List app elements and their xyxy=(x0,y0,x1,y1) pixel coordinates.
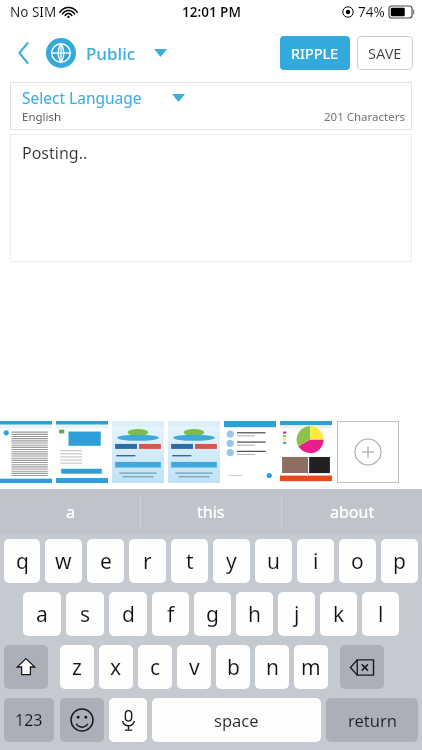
staticText: y xyxy=(226,547,237,576)
staticText: q xyxy=(16,547,29,576)
staticText: m xyxy=(301,653,321,682)
button[interactable]: Posting.. xyxy=(10,134,412,262)
button[interactable]: v xyxy=(177,645,211,689)
button[interactable]: Backspace xyxy=(340,645,384,689)
staticText: p xyxy=(393,547,406,576)
button[interactable] xyxy=(56,421,108,483)
button[interactable]: space xyxy=(152,698,321,742)
staticText: a xyxy=(66,501,75,523)
staticText: SAVE xyxy=(368,43,402,63)
staticText: v xyxy=(189,653,200,682)
button[interactable]: o xyxy=(339,539,376,583)
button[interactable]: n xyxy=(255,645,289,689)
button[interactable]: r xyxy=(129,539,166,583)
button[interactable]: b xyxy=(216,645,250,689)
button[interactable]: l xyxy=(362,592,399,636)
staticText: d xyxy=(122,600,135,629)
staticText: f xyxy=(167,600,175,629)
staticText: k xyxy=(333,600,345,629)
button[interactable]: t xyxy=(171,539,208,583)
staticText: 12:01 PM xyxy=(182,3,241,21)
staticText: h xyxy=(248,600,261,629)
staticText: No SIM xyxy=(10,3,57,21)
staticText: i xyxy=(313,547,319,576)
staticText: about xyxy=(330,501,375,523)
staticText: Select Language xyxy=(22,87,142,108)
button[interactable]: Public xyxy=(44,34,169,72)
staticText: x xyxy=(110,653,122,682)
button[interactable]: Shift xyxy=(4,645,48,689)
button[interactable]: d xyxy=(109,592,147,636)
button[interactable]: Back xyxy=(6,36,40,70)
button[interactable]: SAVE xyxy=(357,36,413,70)
button[interactable]: s xyxy=(66,592,104,636)
button[interactable] xyxy=(112,421,164,483)
staticText: w xyxy=(55,547,72,576)
button[interactable]: x xyxy=(99,645,133,689)
staticText: u xyxy=(267,547,280,576)
button[interactable]: about xyxy=(282,489,422,534)
staticText: j xyxy=(294,600,300,629)
button[interactable]: this xyxy=(141,489,281,534)
staticText: a xyxy=(36,600,48,629)
staticText: c xyxy=(150,653,161,682)
staticText: s xyxy=(80,600,91,629)
button[interactable]: m xyxy=(294,645,328,689)
button[interactable]: RIPPLE xyxy=(280,36,350,70)
button[interactable]: i xyxy=(297,539,334,583)
staticText: return xyxy=(348,709,397,731)
button[interactable]: q xyxy=(4,539,40,583)
button[interactable]: u xyxy=(255,539,292,583)
staticText: o xyxy=(351,547,364,576)
button[interactable]: Emoji xyxy=(60,698,104,742)
staticText: 74% xyxy=(358,3,385,21)
staticText: 123 xyxy=(15,709,43,731)
staticText: r xyxy=(143,547,152,576)
button[interactable]: j xyxy=(278,592,315,636)
staticText: RIPPLE xyxy=(291,43,339,63)
button[interactable] xyxy=(280,421,332,483)
staticText: g xyxy=(206,600,219,629)
staticText: Public xyxy=(86,42,136,65)
staticText: this xyxy=(197,501,225,523)
button[interactable]: Dictation xyxy=(109,698,147,742)
staticText: b xyxy=(227,653,240,682)
staticText: l xyxy=(378,600,384,629)
button[interactable]: e xyxy=(87,539,124,583)
staticText: z xyxy=(72,653,82,682)
staticText: n xyxy=(266,653,279,682)
button[interactable]: y xyxy=(213,539,250,583)
button[interactable]: c xyxy=(138,645,172,689)
button[interactable]: z xyxy=(60,645,94,689)
button[interactable]: k xyxy=(320,592,357,636)
button[interactable] xyxy=(168,421,220,483)
button[interactable]: w xyxy=(45,539,82,583)
button[interactable]: h xyxy=(236,592,273,636)
button[interactable]: p xyxy=(381,539,418,583)
button[interactable]: return xyxy=(326,698,418,742)
staticText: t xyxy=(186,547,194,576)
button[interactable] xyxy=(224,421,276,483)
staticText: e xyxy=(100,547,112,576)
staticText: Posting.. xyxy=(22,142,88,164)
button[interactable]: g xyxy=(194,592,231,636)
staticText: English xyxy=(22,109,62,125)
button[interactable] xyxy=(0,421,52,483)
button[interactable]: Select Language xyxy=(22,87,185,108)
staticText: 201 Characters xyxy=(324,109,405,125)
button[interactable]: 123 xyxy=(4,698,54,742)
button[interactable]: f xyxy=(152,592,189,636)
staticText: space xyxy=(214,709,259,731)
button[interactable]: Add attachment xyxy=(337,421,399,483)
button[interactable]: a xyxy=(0,489,140,534)
button[interactable]: a xyxy=(23,592,61,636)
